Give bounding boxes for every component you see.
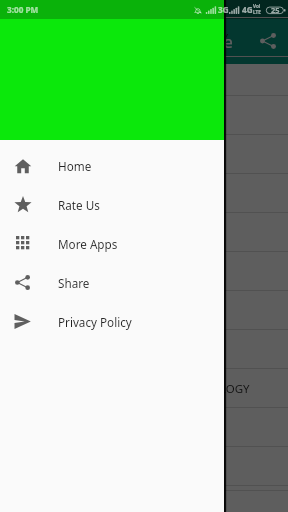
- button[interactable]: Home: [0, 146, 224, 185]
- staticText: Rate Us: [58, 197, 100, 213]
- staticText: 3:00 PM: [7, 4, 39, 15]
- staticText: Share: [58, 275, 90, 291]
- staticText: 4G: [242, 4, 253, 15]
- staticText: SCIENCE AND MODERN TECHNOLOGY: [16, 225, 222, 241]
- staticText: Home: [58, 158, 92, 174]
- button[interactable]: BASIC CONCEPT OF TECHNOLOGY: [0, 57, 288, 96]
- button[interactable]: THE IMPORTANCE OF TECHNOLOGY: [0, 135, 288, 174]
- staticText: DISADVANTAGES OF TECHNOLOGY: [16, 186, 204, 202]
- button[interactable]: TYPES OF INFORMATION TECHNOLOGY: [0, 18, 288, 57]
- button[interactable]: SCIENCE AND MODERN TECHNOLOGY: [0, 213, 288, 252]
- staticText: Privacy Policy: [58, 314, 132, 330]
- button[interactable]: More Apps: [0, 224, 224, 263]
- staticText: IMPACT OF MODERN TECHNOLOGY: [16, 264, 208, 280]
- button[interactable]: Rate Us: [0, 185, 224, 224]
- button[interactable]: Privacy Policy: [0, 302, 224, 341]
- button[interactable]: INTRODUCTION OF THE TECHNOLOGY: [0, 0, 288, 18]
- button[interactable]: CLASSIFICATION OF TECHNOLOGY: [0, 96, 288, 135]
- staticText: Vol: [253, 3, 261, 9]
- button[interactable]: ADVANTAGES OF COMPUTER TECHNOLOGY: [0, 369, 288, 408]
- button[interactable]: Share: [0, 263, 224, 302]
- staticText: 3G: [218, 4, 229, 15]
- button[interactable]: DISADVANTAGES OF TECHNOLOGY: [0, 174, 288, 213]
- button[interactable]: COMPUTER AND INTERNET: [0, 291, 288, 330]
- button[interactable]: FUTURE OF TECHNOLOGY: [0, 408, 288, 447]
- button[interactable]: IMPACT OF MODERN TECHNOLOGY: [0, 252, 288, 291]
- staticText: ADVANTAGES OF COMPUTER TECHNOLOGY: [16, 381, 250, 397]
- button[interactable]: HISTORY OF SCIENCE: [0, 447, 288, 486]
- button[interactable]: Share: [251, 24, 285, 58]
- button[interactable]: MEDICAL AND HEALTH SCIENCE: [0, 486, 288, 491]
- staticText: About Space Science: [69, 30, 233, 53]
- staticText: TYPES OF INFORMATION TECHNOLOGY: [16, 30, 229, 46]
- staticText: LTE: [253, 9, 261, 15]
- staticText: COMPUTER AND INTERNET: [16, 303, 163, 319]
- staticText: 25: [271, 5, 280, 15]
- staticText: THE IMPORTANCE OF TECHNOLOGY: [16, 147, 210, 163]
- button[interactable]: SPACE AND SATELLITE: [0, 330, 288, 369]
- staticText: INTRODUCTION OF THE TECHNOLOGY: [16, 0, 225, 7]
- staticText: More Apps: [58, 236, 118, 252]
